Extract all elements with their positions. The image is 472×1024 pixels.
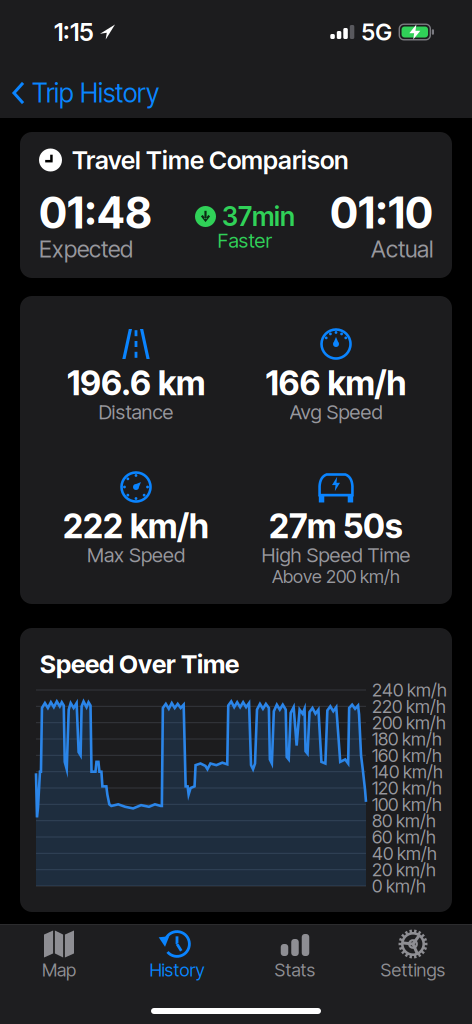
staticText: 200 km/h [372, 712, 446, 734]
staticText: History [149, 959, 204, 981]
staticText: Max Speed [87, 543, 185, 567]
staticText: 01:48 [39, 187, 152, 239]
staticText: Above 200 km/h [272, 566, 400, 587]
staticText: 120 km/h [372, 777, 442, 799]
staticText: 160 km/h [372, 744, 442, 766]
staticText: Trip History [32, 77, 159, 109]
staticText: 100 km/h [372, 793, 442, 815]
staticText: 27m 50s [269, 506, 403, 546]
staticText: 20 km/h [372, 859, 436, 881]
staticText: 196.6 km [67, 363, 205, 403]
staticText: 1:15 [54, 17, 94, 47]
staticText: 5G [361, 18, 392, 46]
staticText: 0 km/h [372, 875, 426, 897]
staticText: 01:10 [330, 187, 433, 239]
button[interactable]: Map [0, 929, 118, 979]
staticText: 220 km/h [372, 695, 446, 717]
staticText: Faster [217, 228, 272, 253]
button[interactable]: Stats [236, 929, 354, 979]
staticText: Travel Time Comparison [72, 145, 349, 175]
button[interactable]: Back [12, 80, 159, 106]
staticText: 60 km/h [372, 826, 436, 848]
staticText: 240 km/h [372, 679, 447, 701]
staticText: Map [42, 959, 76, 981]
button[interactable]: History [118, 929, 236, 979]
staticText: 140 km/h [372, 761, 443, 783]
staticText: 166 km/h [265, 363, 406, 403]
staticText: High Speed Time [261, 543, 410, 567]
staticText: Stats [274, 959, 315, 981]
button[interactable]: Settings [354, 929, 472, 979]
staticText: Distance [98, 400, 173, 424]
staticText: 80 km/h [372, 810, 436, 832]
staticText: Avg Speed [289, 400, 382, 424]
staticText: Settings [380, 959, 445, 981]
staticText: Speed Over Time [40, 649, 239, 679]
staticText: 180 km/h [372, 728, 442, 750]
staticText: Expected [39, 235, 133, 263]
staticText: 37min [222, 201, 295, 232]
staticText: 222 km/h [63, 506, 209, 546]
staticText: 40 km/h [372, 842, 437, 864]
staticText: Actual [371, 235, 433, 263]
